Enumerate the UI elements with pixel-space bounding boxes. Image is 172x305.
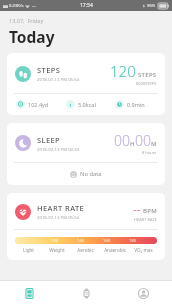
staticText: HEART RATE: [37, 203, 85, 213]
staticText: 13.07, Friday: [9, 17, 44, 24]
button[interactable]: HEART RATE: [7, 193, 165, 260]
staticText: 102.4yd: [28, 101, 49, 108]
staticText: No data: [80, 170, 102, 178]
staticText: 120: [51, 238, 59, 244]
staticText: 17:54: [80, 2, 93, 9]
staticText: H: [130, 140, 135, 148]
staticText: Weight: [49, 247, 65, 253]
staticText: STEPS: [37, 65, 61, 75]
staticText: Anaerobic: [104, 247, 126, 253]
button[interactable]: Device: [58, 281, 115, 305]
staticText: Light: [23, 247, 34, 253]
staticText: --: [133, 201, 141, 217]
staticText: VO₂ max: [134, 247, 153, 253]
button[interactable]: STEPS: [7, 53, 165, 115]
staticText: BPM: [143, 207, 157, 215]
staticText: 8 hours: [142, 150, 157, 155]
staticText: ···: [32, 3, 36, 9]
staticText: SLEEP: [37, 135, 61, 145]
staticText: Today: [9, 26, 55, 47]
staticText: STEPS: [138, 71, 157, 79]
staticText: 96%: [147, 3, 156, 9]
staticText: M: [151, 140, 157, 148]
staticText: Aerobic: [77, 247, 94, 253]
staticText: 00: [135, 131, 151, 150]
staticText: HEART RATE: [134, 217, 157, 222]
staticText: 140: [77, 238, 85, 244]
staticText: 00: [114, 131, 130, 150]
staticText: 0.9min: [127, 101, 145, 108]
staticText: 8000STEPS: [136, 81, 157, 86]
staticText: 5.0kcal: [78, 101, 96, 108]
button[interactable]: Activity: [0, 281, 58, 305]
staticText: 120: [110, 61, 136, 81]
staticText: 2018-07-13 PM 05:54: [37, 214, 80, 220]
staticText: 2018-07-13 PM 05:54: [37, 76, 80, 82]
staticText: 180: [129, 238, 137, 244]
button[interactable]: Profile: [115, 281, 172, 305]
staticText: 2018-07-13 PM 02:33: [37, 146, 80, 152]
staticText: 160: [103, 238, 111, 244]
staticText: 0.23K/s: [9, 3, 24, 9]
button[interactable]: SLEEP: [7, 123, 165, 185]
